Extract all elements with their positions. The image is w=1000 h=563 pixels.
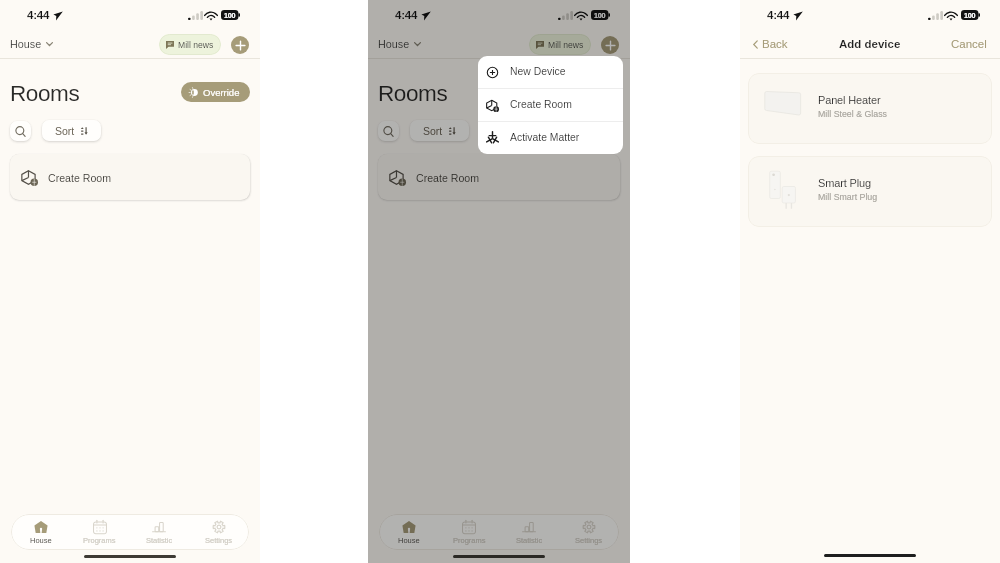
staticText: Create Room: [416, 172, 479, 184]
staticText: Rooms: [10, 81, 80, 106]
staticText: Programs: [83, 536, 116, 544]
staticText: Override: [203, 87, 240, 98]
staticText: Settings: [575, 536, 603, 544]
button[interactable]: Programs: [439, 514, 499, 550]
staticText: Back: [762, 38, 788, 51]
staticText: Smart Plug: [818, 177, 871, 189]
button[interactable]: Statistic: [499, 514, 559, 550]
staticText: Activate Matter: [510, 132, 580, 144]
button[interactable]: House: [379, 514, 439, 550]
button[interactable]: Override: [181, 82, 250, 102]
staticText: Mill Smart Plug: [818, 192, 878, 202]
button[interactable]: Search: [10, 121, 31, 141]
staticText: Sort: [423, 125, 443, 137]
staticText: Add device: [839, 38, 901, 51]
staticText: Sort: [55, 125, 75, 137]
button[interactable]: Settings: [559, 514, 619, 550]
button[interactable]: House: [376, 35, 423, 53]
button[interactable]: Sort: [42, 120, 101, 141]
staticText: 4:44: [27, 9, 50, 22]
staticText: 4:44: [767, 9, 790, 22]
button[interactable]: Statistic: [129, 514, 189, 550]
staticText: Mill Steel & Glass: [818, 109, 887, 119]
staticText: 4:44: [395, 9, 418, 22]
button[interactable]: Add: [231, 36, 249, 54]
staticText: Panel Heater: [818, 94, 881, 106]
staticText: Create Room: [48, 172, 111, 184]
staticText: Mill news: [178, 40, 214, 50]
staticText: Override: [573, 87, 610, 98]
staticText: Statistic: [516, 536, 543, 544]
staticText: House: [398, 536, 420, 544]
button[interactable]: House: [11, 514, 70, 550]
button[interactable]: Create Room: [378, 154, 620, 200]
staticText: Settings: [205, 536, 233, 544]
button[interactable]: Override: [551, 82, 620, 102]
button[interactable]: Back: [753, 38, 788, 51]
staticText: New Device: [510, 66, 566, 78]
button[interactable]: Programs: [70, 514, 129, 550]
button[interactable]: Sort: [410, 120, 469, 141]
staticText: House: [10, 38, 42, 50]
button[interactable]: Cancel: [951, 38, 987, 51]
staticText: Create Room: [510, 99, 572, 111]
staticText: House: [30, 536, 52, 544]
button[interactable]: Create Room: [10, 154, 250, 200]
button[interactable]: Panel Heater: [748, 73, 992, 144]
staticText: Statistic: [146, 536, 173, 544]
staticText: Mill news: [548, 40, 584, 50]
staticText: Programs: [453, 536, 486, 544]
staticText: 100: [594, 11, 606, 19]
button[interactable]: Create Room: [478, 89, 623, 121]
button[interactable]: Activate Matter: [478, 122, 623, 154]
staticText: 100: [224, 11, 236, 19]
button[interactable]: Search: [378, 121, 399, 141]
staticText: 100: [964, 11, 976, 19]
staticText: House: [378, 38, 410, 50]
button[interactable]: Mill news: [529, 34, 591, 55]
button[interactable]: Settings: [189, 514, 249, 550]
staticText: Rooms: [378, 81, 448, 106]
button[interactable]: Add: [601, 36, 619, 54]
button[interactable]: Smart Plug: [748, 156, 992, 227]
button[interactable]: New Device: [478, 56, 623, 88]
button[interactable]: House: [8, 35, 55, 53]
button[interactable]: Mill news: [159, 34, 221, 55]
